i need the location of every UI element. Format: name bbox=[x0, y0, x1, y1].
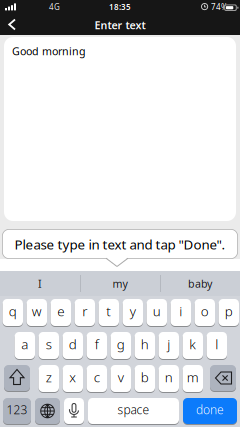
staticText: b bbox=[141, 368, 149, 386]
button[interactable]: Delete bbox=[210, 365, 236, 392]
staticText: 123 bbox=[6, 401, 27, 417]
button[interactable]: c bbox=[87, 365, 107, 393]
staticText: my bbox=[112, 276, 127, 291]
staticText: h bbox=[141, 335, 149, 353]
button[interactable]: r bbox=[75, 299, 95, 327]
staticText: k bbox=[189, 335, 196, 353]
staticText: u bbox=[153, 302, 161, 320]
button[interactable]: a bbox=[15, 332, 35, 360]
staticText: Good morning bbox=[12, 44, 86, 58]
button[interactable]: v bbox=[111, 365, 131, 393]
staticText: Enter text bbox=[94, 18, 145, 32]
staticText: d bbox=[69, 335, 77, 353]
staticText: Please type in text and tap "Done". bbox=[14, 235, 225, 253]
button[interactable]: j bbox=[159, 332, 179, 360]
staticText: t bbox=[106, 302, 111, 320]
staticText: space bbox=[117, 401, 149, 417]
button[interactable]: w bbox=[27, 299, 47, 327]
button[interactable]: s bbox=[39, 332, 59, 360]
staticText: y bbox=[130, 302, 136, 320]
button[interactable]: n bbox=[159, 365, 179, 393]
staticText: e bbox=[57, 302, 64, 320]
button[interactable]: z bbox=[39, 365, 59, 393]
staticText: f bbox=[95, 335, 99, 353]
button[interactable]: 123 bbox=[3, 398, 31, 425]
staticText: r bbox=[82, 302, 87, 320]
button[interactable]: y bbox=[123, 299, 143, 327]
button[interactable]: b bbox=[135, 365, 155, 393]
staticText: baby bbox=[188, 276, 212, 291]
button[interactable]: q bbox=[3, 299, 23, 327]
button[interactable]: f bbox=[87, 332, 107, 360]
button[interactable]: done bbox=[183, 398, 237, 425]
staticText: p bbox=[225, 302, 233, 320]
button[interactable]: h bbox=[135, 332, 155, 360]
button[interactable]: my bbox=[80, 271, 160, 296]
staticText: o bbox=[201, 302, 209, 320]
staticText: l bbox=[215, 335, 218, 353]
button[interactable]: m bbox=[183, 365, 203, 393]
staticText: q bbox=[9, 302, 17, 320]
staticText: a bbox=[21, 335, 28, 353]
staticText: g bbox=[117, 335, 125, 353]
button[interactable]: o bbox=[195, 299, 215, 327]
button[interactable]: Shift bbox=[4, 365, 30, 392]
staticText: c bbox=[94, 368, 100, 386]
button[interactable]: k bbox=[183, 332, 203, 360]
staticText: done bbox=[196, 401, 224, 417]
button[interactable]: g bbox=[111, 332, 131, 360]
button[interactable]: t bbox=[99, 299, 119, 327]
button[interactable]: u bbox=[147, 299, 167, 327]
button[interactable]: I bbox=[0, 271, 80, 296]
staticText: w bbox=[32, 302, 42, 320]
staticText: z bbox=[46, 368, 52, 386]
staticText: I bbox=[38, 276, 42, 291]
staticText: 18:35 bbox=[109, 1, 131, 12]
button[interactable]: space bbox=[88, 398, 179, 425]
button[interactable]: Next keyboard bbox=[35, 398, 60, 425]
staticText: v bbox=[118, 368, 124, 386]
button[interactable]: i bbox=[171, 299, 191, 327]
button[interactable]: x bbox=[63, 365, 83, 393]
staticText: 4G bbox=[49, 1, 60, 12]
button[interactable]: l bbox=[207, 332, 227, 360]
button[interactable]: p bbox=[219, 299, 239, 327]
button[interactable]: baby bbox=[160, 271, 240, 296]
staticText: s bbox=[46, 335, 52, 353]
button[interactable]: d bbox=[63, 332, 83, 360]
staticText: m bbox=[187, 368, 199, 386]
staticText: n bbox=[165, 368, 173, 386]
staticText: x bbox=[69, 368, 76, 386]
staticText: i bbox=[179, 302, 182, 320]
button[interactable]: e bbox=[51, 299, 71, 327]
staticText: j bbox=[167, 335, 170, 353]
staticText: 74% bbox=[211, 1, 228, 12]
button[interactable]: Back bbox=[1, 14, 23, 35]
button[interactable]: Dictation bbox=[64, 398, 84, 425]
